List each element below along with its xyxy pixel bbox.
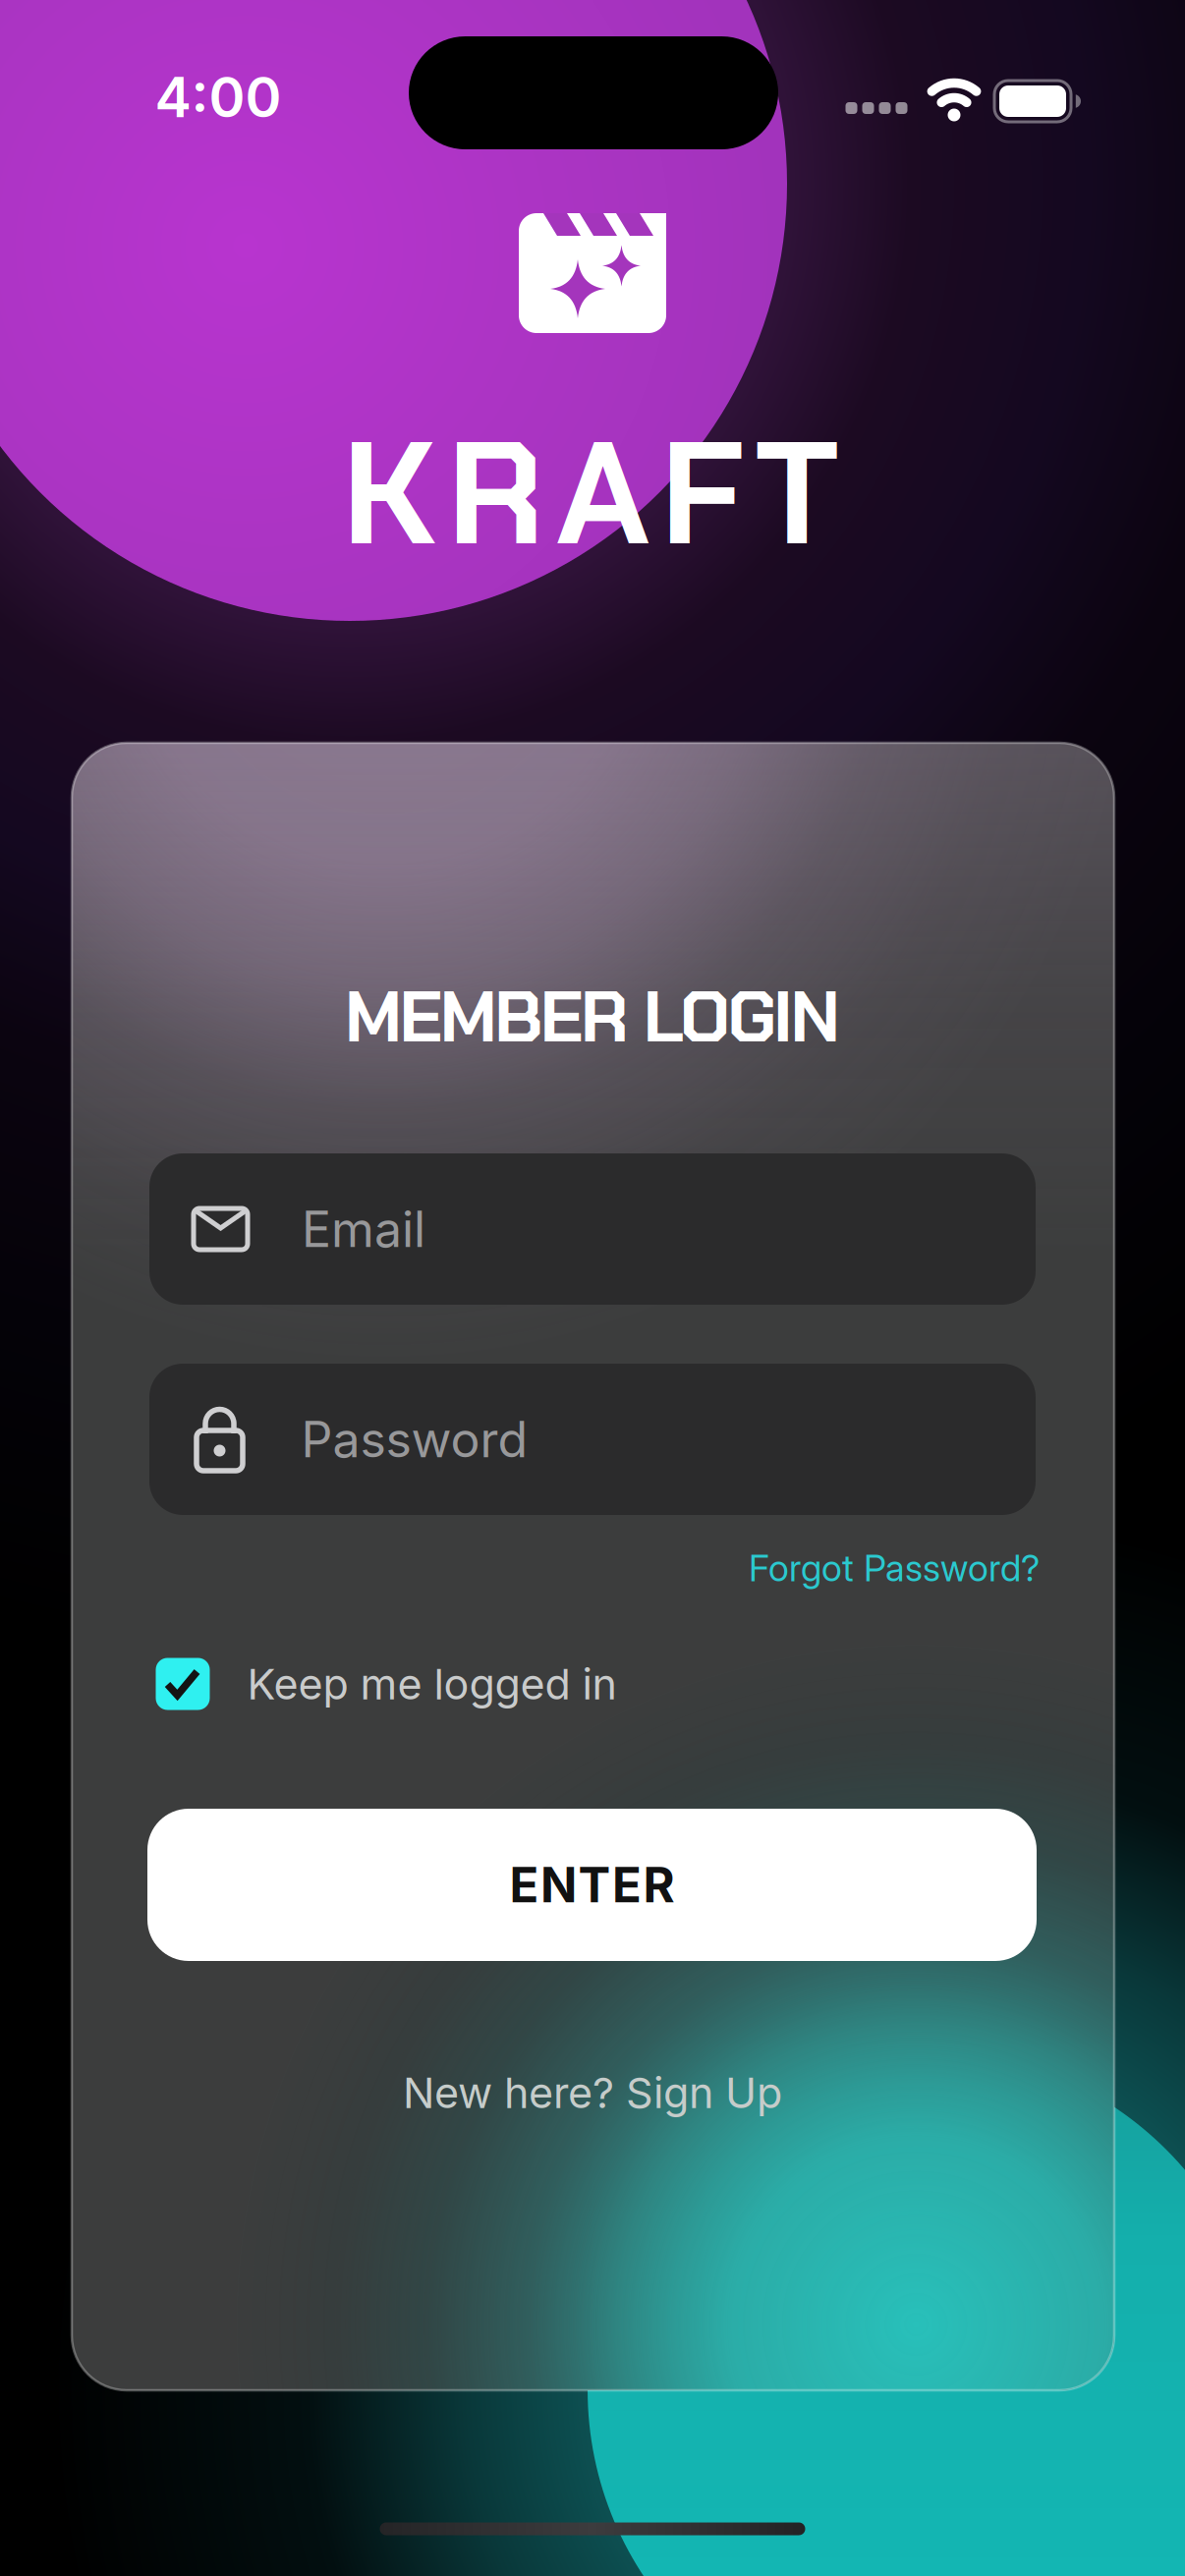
button[interactable]: Email [149, 1153, 1036, 1305]
staticText: KRAFT [342, 401, 839, 587]
staticText: New here? Sign Up [403, 2067, 782, 2118]
staticText: Keep me logged in [247, 1658, 617, 1709]
staticText: Forgot Password? [749, 1546, 1040, 1590]
button[interactable]: Forgot Password? [749, 1546, 1040, 1590]
staticText: MEMBER LOGIN [345, 970, 840, 1063]
button[interactable]: Keep me logged in [156, 1658, 617, 1710]
button[interactable]: ENTER [147, 1809, 1037, 1961]
staticText: Email [302, 1199, 425, 1259]
staticText: ENTER [509, 1856, 675, 1914]
button[interactable]: New here? Sign Up [403, 2067, 782, 2118]
button[interactable]: Password [149, 1364, 1036, 1515]
staticText: Password [301, 1410, 528, 1469]
staticText: 4:00 [155, 64, 282, 131]
